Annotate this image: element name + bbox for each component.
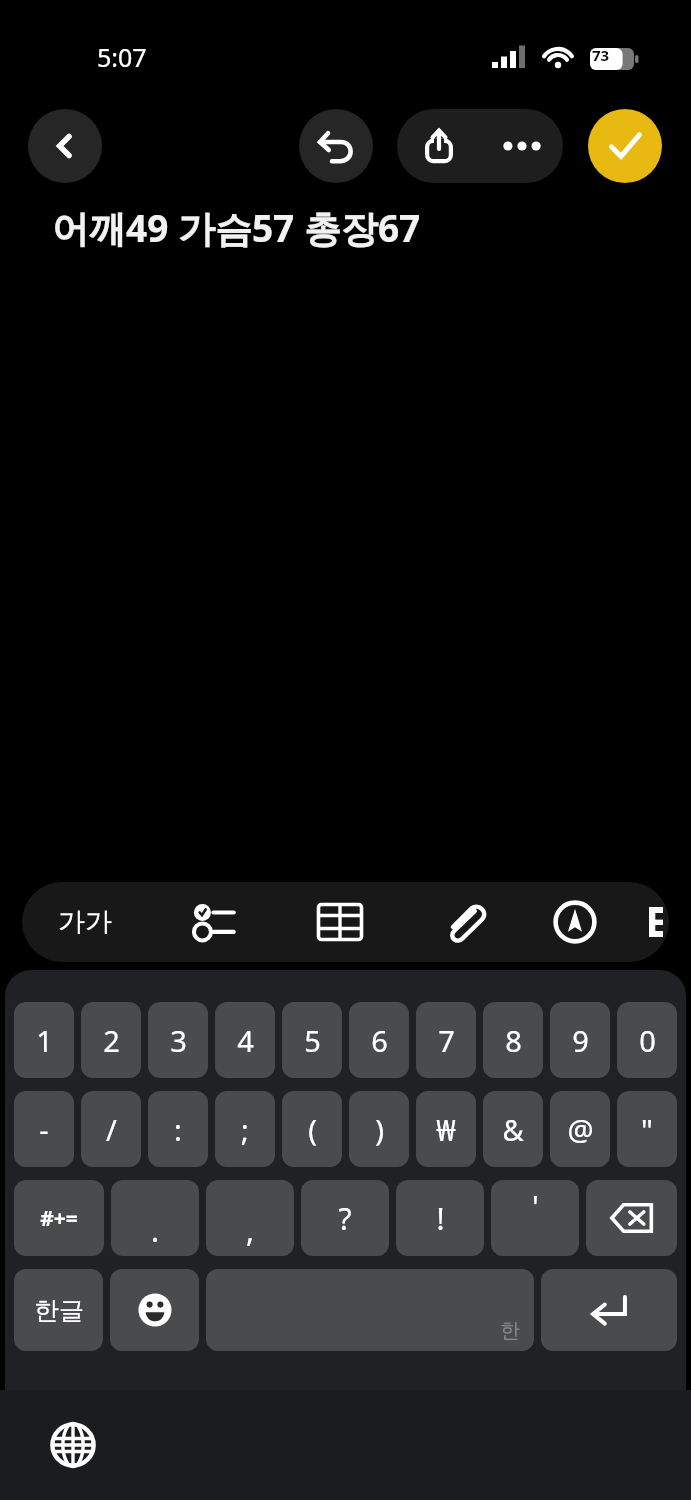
- button[interactable]: #+=: [14, 1180, 104, 1256]
- button[interactable]: /: [81, 1091, 141, 1167]
- button[interactable]: &: [483, 1091, 543, 1167]
- staticText: /: [106, 1110, 117, 1149]
- staticText: 한글: [34, 1295, 84, 1326]
- button[interactable]: More formatting: [642, 882, 669, 962]
- button[interactable]: Space: [206, 1269, 534, 1351]
- button[interactable]: Done: [588, 109, 662, 183]
- button[interactable]: 3: [148, 1002, 208, 1078]
- staticText: @: [567, 1110, 594, 1149]
- staticText: ": [641, 1110, 653, 1149]
- button[interactable]: ;: [215, 1091, 275, 1167]
- staticText: 어깨49 가슴57 총장67: [52, 202, 421, 253]
- button[interactable]: ": [617, 1091, 677, 1167]
- staticText: ?: [338, 1198, 352, 1239]
- staticText: !: [436, 1198, 445, 1239]
- staticText: ': [532, 1186, 539, 1227]
- staticText: .: [151, 1210, 160, 1251]
- button[interactable]: Enter: [541, 1269, 677, 1351]
- staticText: (: [308, 1110, 317, 1149]
- button[interactable]: Attach: [418, 882, 508, 962]
- staticText: 0: [639, 1021, 656, 1060]
- staticText: 8: [505, 1021, 522, 1060]
- staticText: #+=: [40, 1204, 78, 1233]
- button[interactable]: 8: [483, 1002, 543, 1078]
- staticText: 5: [304, 1021, 321, 1060]
- button[interactable]: 7: [416, 1002, 476, 1078]
- button[interactable]: !: [396, 1180, 484, 1256]
- button[interactable]: Table: [295, 882, 385, 962]
- button[interactable]: Share: [397, 109, 480, 183]
- button[interactable]: Emoji: [110, 1269, 199, 1351]
- button[interactable]: Undo: [299, 109, 373, 183]
- staticText: 6: [371, 1021, 388, 1060]
- button[interactable]: 9: [550, 1002, 610, 1078]
- button[interactable]: Backspace: [586, 1180, 677, 1256]
- button[interactable]: (: [282, 1091, 342, 1167]
- button[interactable]: -: [14, 1091, 74, 1167]
- staticText: &: [502, 1110, 524, 1149]
- staticText: 3: [170, 1021, 187, 1060]
- staticText: ₩: [436, 1110, 456, 1149]
- button[interactable]: .: [111, 1180, 199, 1256]
- staticText: -: [39, 1110, 49, 1149]
- button[interactable]: 가가: [40, 882, 130, 962]
- button[interactable]: Change language: [40, 1412, 106, 1478]
- button[interactable]: :: [148, 1091, 208, 1167]
- button[interactable]: More options: [480, 109, 563, 183]
- staticText: ;: [241, 1110, 249, 1149]
- staticText: ,: [246, 1210, 255, 1251]
- button[interactable]: 0: [617, 1002, 677, 1078]
- staticText: 5:07: [97, 40, 147, 74]
- button[interactable]: 2: [81, 1002, 141, 1078]
- button[interactable]: ': [491, 1180, 579, 1256]
- button[interactable]: Draw: [530, 882, 620, 962]
- button[interactable]: ₩: [416, 1091, 476, 1167]
- staticText: 2: [103, 1021, 120, 1060]
- button[interactable]: ): [349, 1091, 409, 1167]
- button[interactable]: @: [550, 1091, 610, 1167]
- button[interactable]: 6: [349, 1002, 409, 1078]
- button[interactable]: ,: [206, 1180, 294, 1256]
- staticText: 73: [592, 45, 610, 65]
- staticText: ): [375, 1110, 384, 1149]
- staticText: 1: [36, 1021, 53, 1060]
- button[interactable]: 한글: [14, 1269, 103, 1351]
- staticText: 한: [500, 1318, 520, 1343]
- button[interactable]: 1: [14, 1002, 74, 1078]
- staticText: 4: [237, 1021, 254, 1060]
- staticText: 7: [438, 1021, 455, 1060]
- button[interactable]: Back: [28, 109, 102, 183]
- staticText: 가가: [58, 905, 112, 939]
- button[interactable]: 4: [215, 1002, 275, 1078]
- button[interactable]: Checklist: [174, 882, 264, 962]
- button[interactable]: ?: [301, 1180, 389, 1256]
- button[interactable]: 5: [282, 1002, 342, 1078]
- staticText: :: [174, 1110, 182, 1149]
- staticText: 9: [572, 1021, 589, 1060]
